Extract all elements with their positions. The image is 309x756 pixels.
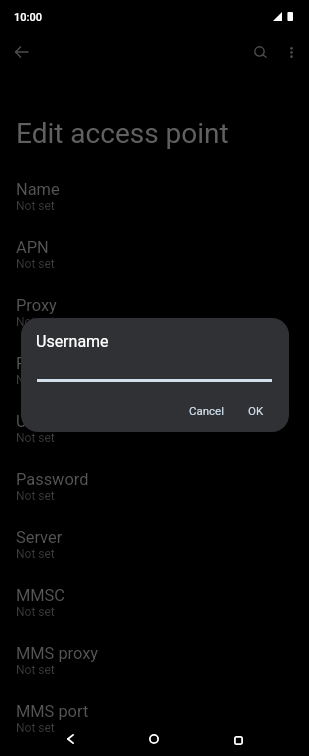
staticText: Not set	[16, 721, 55, 735]
staticText: Port	[16, 354, 47, 373]
staticText: Name	[16, 180, 60, 199]
button[interactable]: MMS proxy	[0, 638, 309, 696]
staticText: Password	[16, 470, 89, 489]
button[interactable]: Search	[236, 28, 284, 76]
button[interactable]: Password	[0, 464, 309, 522]
button[interactable]: Back	[48, 728, 92, 756]
button[interactable]: Cancel	[179, 398, 235, 423]
staticText: Edit access point	[16, 117, 229, 150]
staticText: Not set	[16, 489, 55, 503]
button[interactable]: APN	[0, 232, 309, 290]
button[interactable]: Proxy	[0, 290, 309, 348]
staticText: Cancel	[189, 404, 225, 417]
button[interactable]: Name	[0, 174, 309, 232]
staticText: Not set	[16, 605, 55, 619]
staticText: MMSC	[16, 586, 66, 605]
button[interactable]: Home	[132, 728, 176, 756]
staticText: Not set	[16, 199, 55, 213]
staticText: Not set	[16, 315, 55, 329]
button[interactable]: Navigate up	[0, 28, 48, 76]
staticText: Username	[16, 412, 91, 431]
staticText: APN	[16, 238, 49, 257]
button[interactable]: MMS port	[0, 696, 309, 754]
staticText: Not set	[16, 373, 55, 387]
button[interactable]: Server	[0, 522, 309, 580]
staticText: Server	[16, 528, 63, 547]
staticText: Username	[36, 332, 109, 351]
staticText: Proxy	[16, 296, 57, 315]
staticText: Not set	[16, 431, 55, 445]
staticText: MMS proxy	[16, 644, 99, 663]
staticText: OK	[248, 404, 264, 417]
button[interactable]: MMSC	[0, 580, 309, 638]
staticText: Not set	[16, 547, 55, 561]
staticText: 10:00	[14, 11, 42, 24]
staticText: Not set	[16, 257, 55, 271]
button[interactable]: Port	[0, 348, 309, 406]
button[interactable]: Username	[0, 406, 309, 464]
button[interactable]: Recent apps	[216, 728, 260, 756]
button[interactable]: More options	[267, 28, 309, 76]
button[interactable]: OK	[238, 398, 274, 423]
staticText: MMS port	[16, 702, 89, 721]
staticText: Not set	[16, 663, 55, 677]
